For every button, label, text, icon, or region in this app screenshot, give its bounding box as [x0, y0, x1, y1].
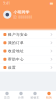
button[interactable]: 帮助中心 [0, 55, 56, 63]
staticText: ▮▮▮ [50, 2, 53, 5]
button[interactable]: 购物车 [28, 91, 42, 100]
staticText: 收货地址 [8, 49, 24, 53]
staticText: 购物车 [30, 96, 39, 99]
button[interactable]: 收货地址 [0, 47, 56, 55]
staticText: 小明同学 [13, 10, 29, 15]
button[interactable]: 分类 [14, 91, 28, 100]
staticText: 分类 [18, 96, 24, 99]
button[interactable]: 账户与安全 [0, 30, 56, 39]
staticText: 账户与安全 [8, 32, 28, 37]
button[interactable]: 设置 [0, 63, 56, 72]
staticText: 帮助中心 [8, 57, 24, 61]
staticText: 首页 [4, 96, 10, 99]
staticText: 9:41 [3, 1, 10, 5]
button[interactable]: 首页 [0, 91, 14, 100]
button[interactable]: 我的订单 [0, 39, 56, 47]
staticText: 我的订单 [8, 40, 24, 45]
button[interactable]: 我的 [42, 91, 56, 100]
staticText: ID: 8888888 [13, 16, 32, 19]
staticText: 我的 [46, 96, 52, 99]
staticText: 设置 [8, 65, 16, 70]
